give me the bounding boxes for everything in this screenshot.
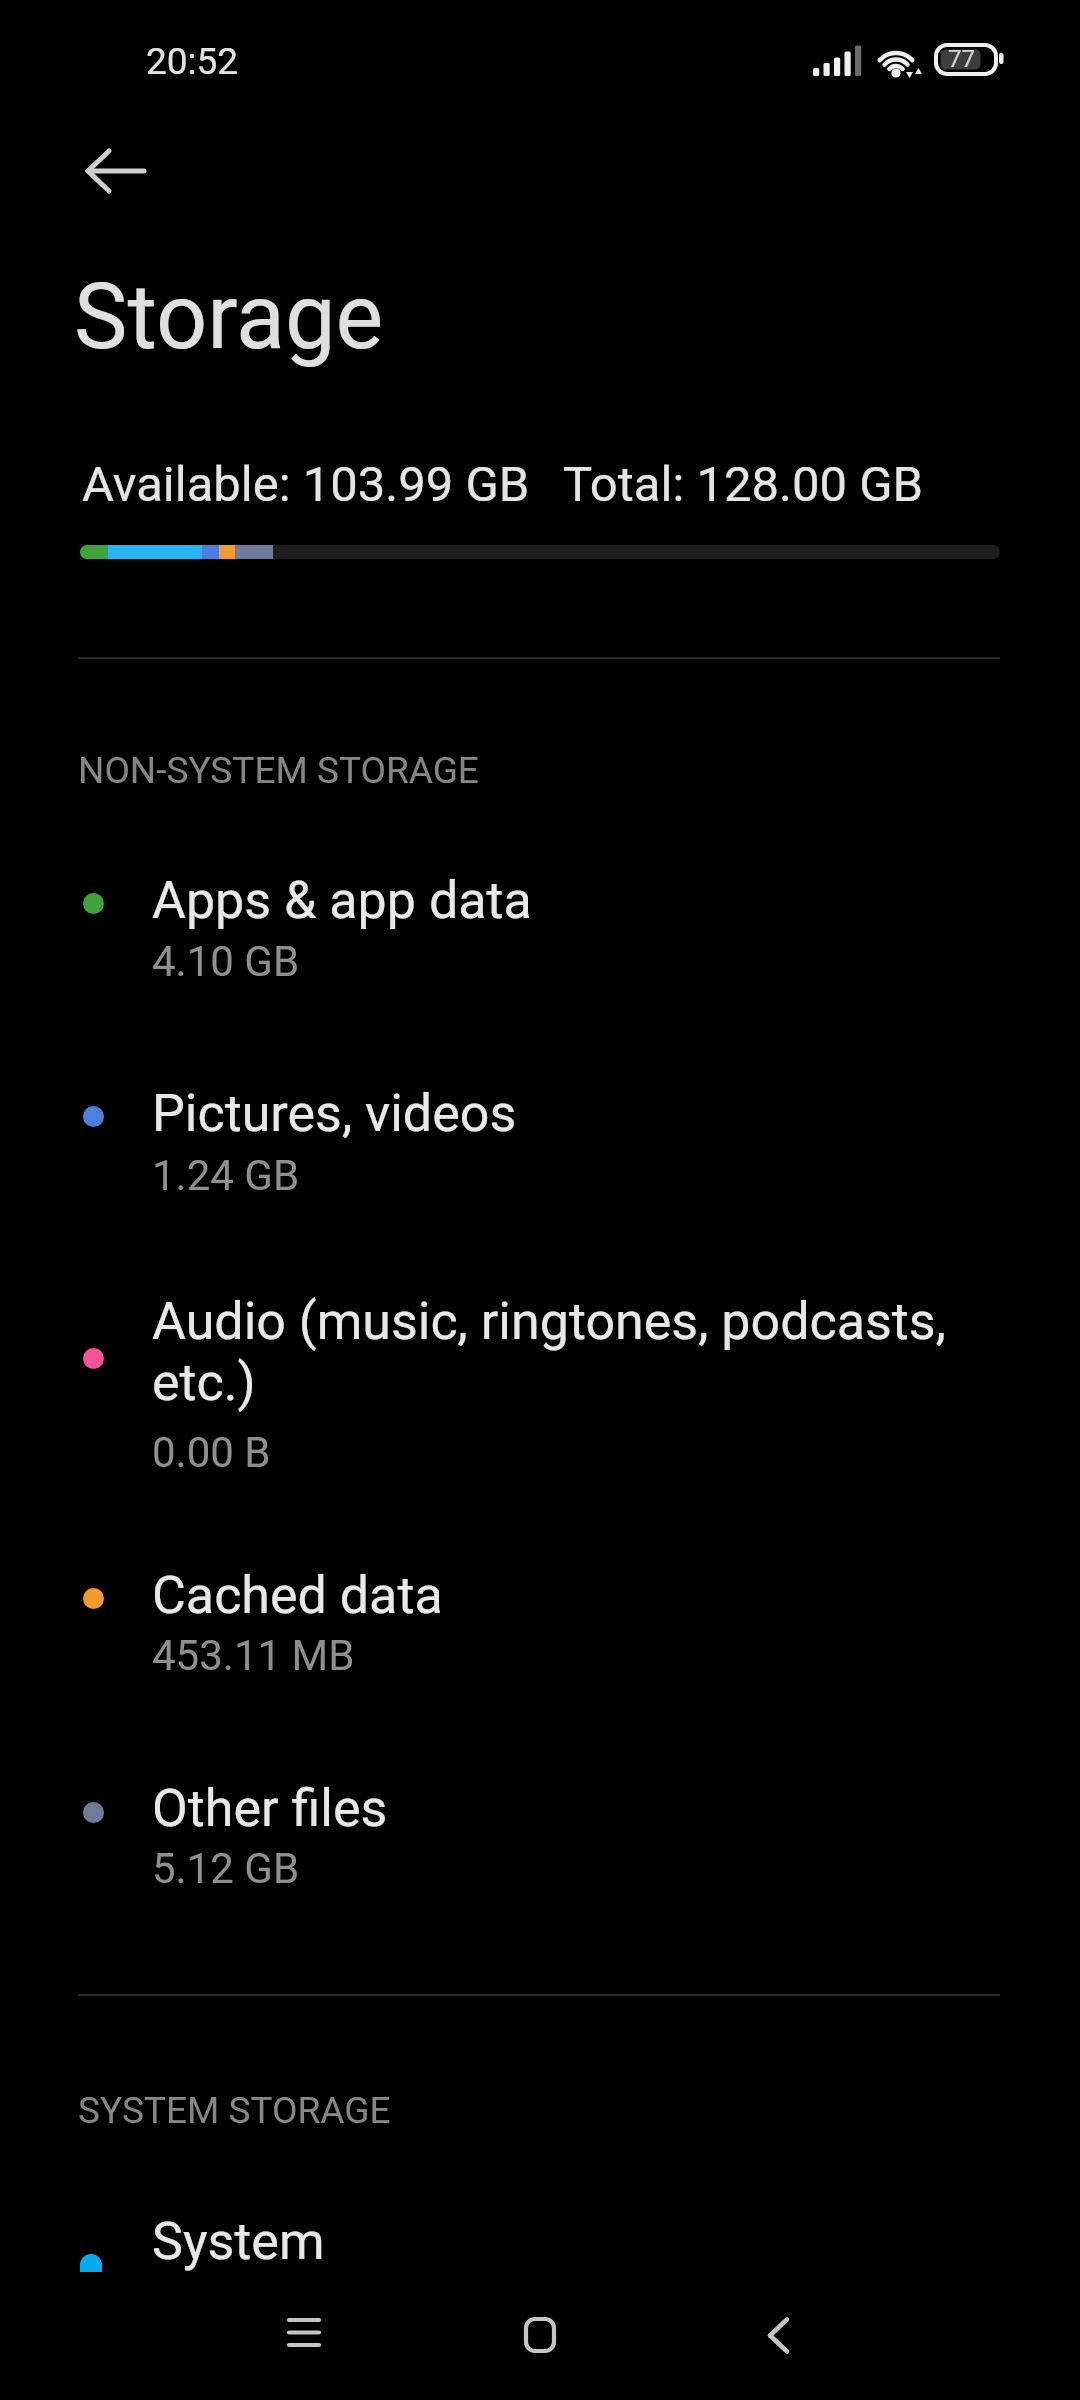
staticText: 453.11 MB: [152, 1631, 355, 1680]
button[interactable]: Audio (music, ringtones, podcasts, etc.): [0, 1255, 1080, 1505]
button[interactable]: Cached data: [0, 1530, 1080, 1730]
button[interactable]: Apps & app data: [0, 830, 1080, 1030]
staticText: Apps & app data: [152, 870, 532, 931]
button[interactable]: [740, 2297, 820, 2373]
staticText: System: [152, 2211, 325, 2272]
button[interactable]: Other files: [0, 1740, 1080, 1940]
staticText: Pictures, videos: [152, 1083, 517, 1144]
staticText: Audio (music, ringtones, podcasts, etc.): [152, 1291, 946, 1413]
staticText: 5.12 GB: [152, 1844, 300, 1893]
staticText: 20:52: [146, 40, 239, 83]
staticText: Available: 103.99 GB: [82, 456, 530, 513]
staticText: 4.10 GB: [152, 937, 300, 986]
button[interactable]: [500, 2297, 580, 2373]
staticText: Other files: [152, 1778, 388, 1839]
staticText: 1.24 GB: [152, 1151, 300, 1200]
staticText: NON-SYSTEM STORAGE: [78, 749, 479, 792]
staticText: 77: [948, 45, 975, 73]
staticText: Cached data: [152, 1565, 443, 1626]
button[interactable]: Pictures, videos: [0, 1045, 1080, 1245]
staticText: 0.00 B: [152, 1428, 271, 1477]
button[interactable]: [264, 2297, 344, 2373]
button[interactable]: System: [0, 2195, 1080, 2272]
staticText: Total: 128.00 GB: [563, 456, 924, 513]
staticText: SYSTEM STORAGE: [78, 2089, 391, 2132]
button[interactable]: [60, 125, 170, 220]
staticText: Storage: [74, 265, 384, 370]
